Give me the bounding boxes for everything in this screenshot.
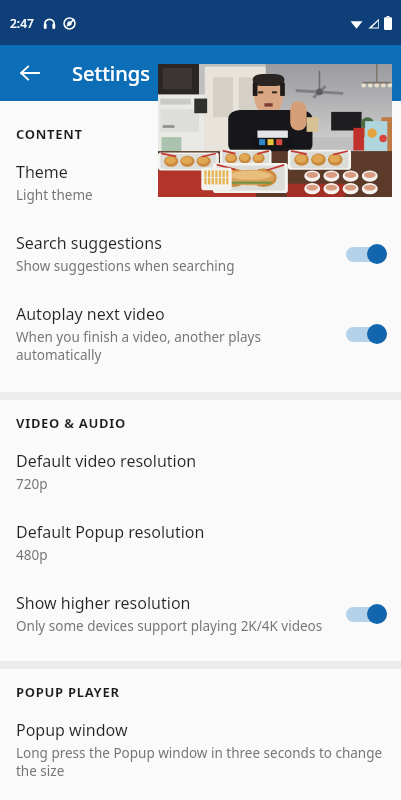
staticText: Autoplay next video [16,303,165,325]
staticText: 480p [16,546,48,564]
button[interactable]: Theme [0,147,401,218]
staticText: Show suggestions when searching [16,257,235,275]
button[interactable]: Back [8,51,52,95]
staticText: Settings [72,60,150,87]
button[interactable]: Toggle [341,601,387,627]
staticText: Default Popup resolution [16,521,205,543]
staticText: 720p [16,475,48,493]
staticText: VIDEO & AUDIO [16,414,126,432]
staticText: Show higher resolution [16,592,191,614]
button[interactable]: Default video resolution [0,436,401,507]
button[interactable]: Popup player [158,64,392,197]
button[interactable]: Show higher resolution [0,578,401,649]
button[interactable]: Popup window [0,705,401,794]
staticText: Only some devices support playing 2K/4K … [16,617,323,635]
staticText: Long press the Popup window in three sec… [16,744,387,780]
staticText: POPUP PLAYER [16,683,120,701]
staticText: CONTENT [16,125,83,143]
staticText: When you finish a video, another plays a… [16,328,331,364]
staticText: 2:47 [10,15,34,31]
button[interactable]: Autoplay next video [0,289,401,378]
staticText: Search suggestions [16,232,162,254]
staticText: Default video resolution [16,450,197,472]
staticText: Popup window [16,719,128,741]
button[interactable]: Toggle [341,321,387,347]
button[interactable]: Default Popup resolution [0,507,401,578]
button[interactable]: Search suggestions [0,218,401,289]
staticText: Light theme [16,186,93,204]
staticText: Theme [16,161,68,183]
button[interactable]: Toggle [341,241,387,267]
